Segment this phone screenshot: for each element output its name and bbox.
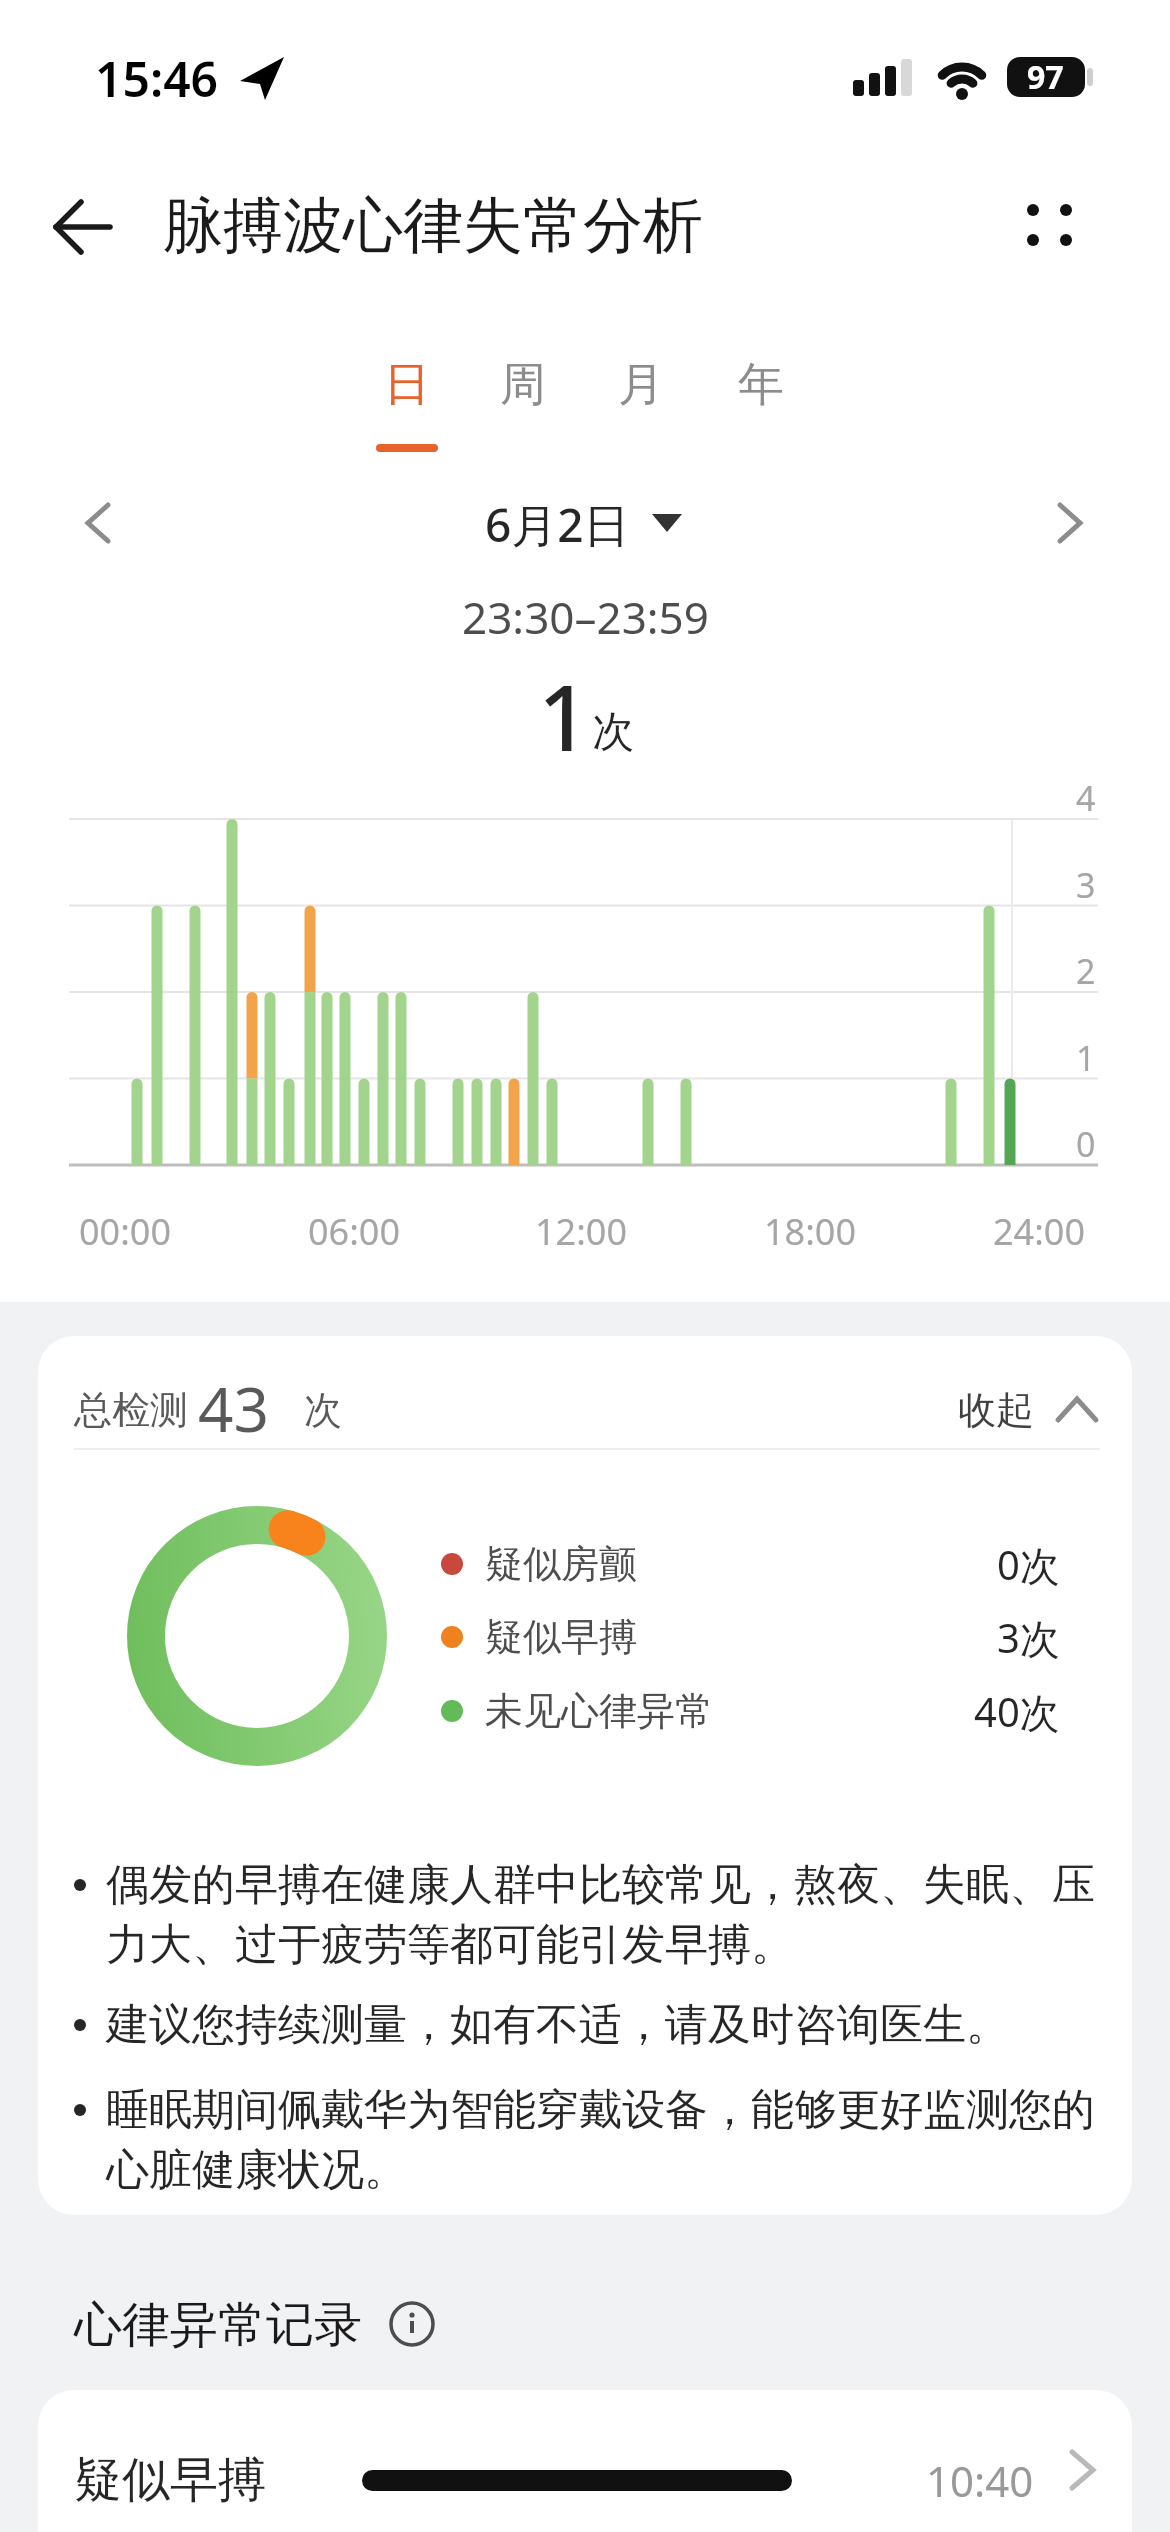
button[interactable]: 年	[716, 345, 806, 425]
staticText: 4	[1076, 775, 1096, 821]
staticText: 力大、过于疲劳等都可能引发早搏。	[106, 1918, 794, 1972]
button[interactable]	[1005, 185, 1095, 270]
button[interactable]: 日	[362, 345, 452, 425]
staticText: 2	[1076, 948, 1096, 994]
button[interactable]	[450, 485, 710, 565]
staticText: 未见心律异常	[485, 1687, 713, 1735]
staticText: 心律异常记录	[74, 2295, 362, 2355]
staticText: 偶发的早搏在健康人群中比较常见，熬夜、失眠、压	[106, 1858, 1095, 1912]
staticText: 收起	[958, 1386, 1034, 1434]
button[interactable]	[60, 485, 140, 565]
staticText: 疑似房颤	[485, 1540, 637, 1588]
button[interactable]	[1030, 485, 1110, 565]
staticText: 建议您持续测量，如有不适，请及时咨询医生。	[106, 1998, 1009, 2052]
button[interactable]	[390, 2302, 434, 2346]
staticText: 23:30–23:59	[462, 587, 709, 647]
staticText: 1	[1076, 1035, 1096, 1081]
staticText: 次	[304, 1386, 342, 1434]
staticText: 周	[500, 356, 546, 414]
staticText: 06:00	[308, 1207, 401, 1256]
staticText: 24:00	[993, 1207, 1086, 1256]
staticText: 97	[1027, 55, 1064, 99]
staticText: 43	[198, 1366, 269, 1450]
button[interactable]: 月	[596, 345, 686, 425]
staticText: 心脏健康状况。	[106, 2143, 407, 2197]
staticText: 10:40	[926, 2452, 1034, 2509]
staticText: 次	[592, 706, 634, 759]
button[interactable]	[930, 1370, 1110, 1450]
staticText: 0次	[997, 1537, 1060, 1592]
staticText: 15:46	[95, 46, 219, 111]
staticText: 睡眠期间佩戴华为智能穿戴设备，能够更好监测您的	[106, 2083, 1095, 2137]
staticText: 12:00	[535, 1207, 628, 1256]
button[interactable]	[30, 190, 140, 270]
staticText: 疑似早搏	[74, 2450, 266, 2510]
staticText: 日	[384, 356, 430, 414]
staticText: 00:00	[79, 1207, 172, 1256]
staticText: 0	[1076, 1121, 1096, 1167]
staticText: 脉搏波心律失常分析	[163, 188, 703, 264]
button[interactable]: 周	[478, 345, 568, 425]
staticText: 月	[618, 356, 664, 414]
staticText: 总检测	[74, 1386, 188, 1434]
staticText: 3	[1076, 862, 1096, 908]
staticText: 18:00	[764, 1207, 857, 1256]
staticText: 年	[738, 356, 784, 414]
staticText: 1	[538, 655, 590, 765]
staticText: 40次	[974, 1684, 1060, 1739]
button[interactable]	[38, 2390, 1132, 2532]
staticText: 疑似早搏	[485, 1613, 637, 1661]
staticText: 6月2日	[485, 493, 630, 556]
staticText: 3次	[997, 1610, 1060, 1665]
